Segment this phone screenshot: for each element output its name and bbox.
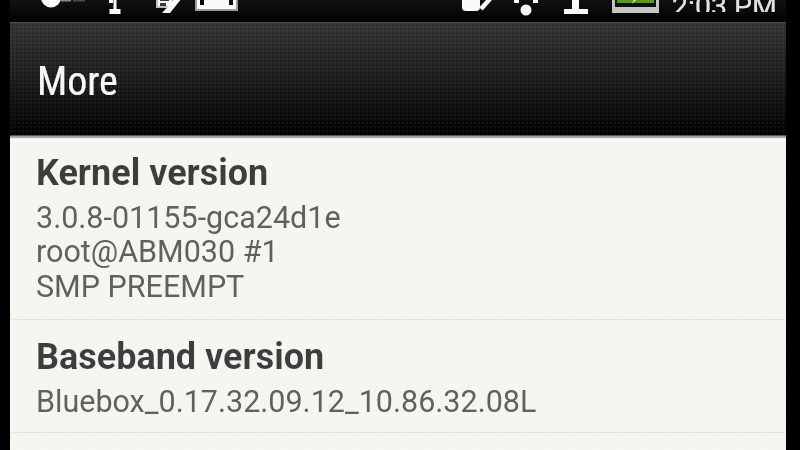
button[interactable]: Baseband version — [10, 320, 786, 432]
staticText: 3.0.8-01155-gca24d1e root@ABM030 #1 SMP … — [36, 200, 341, 305]
button[interactable]: Kernel version — [10, 134, 786, 320]
staticText: Kernel version — [36, 152, 269, 194]
staticText: Baseband version — [36, 336, 325, 378]
staticText: More — [37, 58, 118, 105]
staticText: 2:03 PM — [672, 0, 777, 12]
staticText: Bluebox_0.17.32.09.12_10.86.32.08L — [36, 384, 537, 420]
